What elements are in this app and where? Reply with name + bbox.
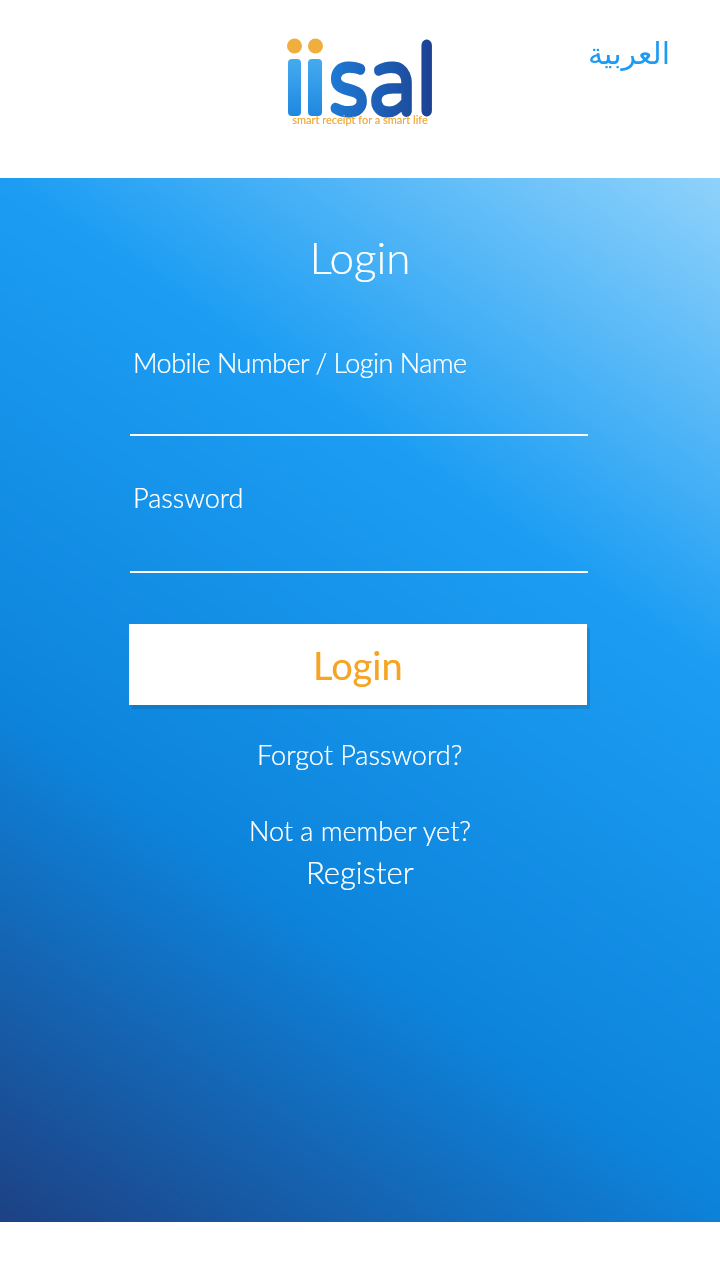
button[interactable] xyxy=(130,495,588,573)
button[interactable]: Register xyxy=(306,853,414,890)
staticText: sal xyxy=(328,23,437,143)
button[interactable]: Forgot Password? xyxy=(257,738,463,770)
staticText: Mobile Number / Login Name xyxy=(133,346,467,378)
button[interactable]: Login xyxy=(129,624,587,705)
staticText: sal xyxy=(328,23,437,143)
staticText: Login xyxy=(0,231,720,284)
staticText: Not a member yet? xyxy=(0,814,720,846)
button[interactable]: العربية xyxy=(588,36,670,71)
button[interactable] xyxy=(130,358,588,436)
staticText: Login xyxy=(313,642,403,688)
staticText: Password xyxy=(133,481,244,513)
staticText: smart receipt for a smart life xyxy=(0,113,720,126)
